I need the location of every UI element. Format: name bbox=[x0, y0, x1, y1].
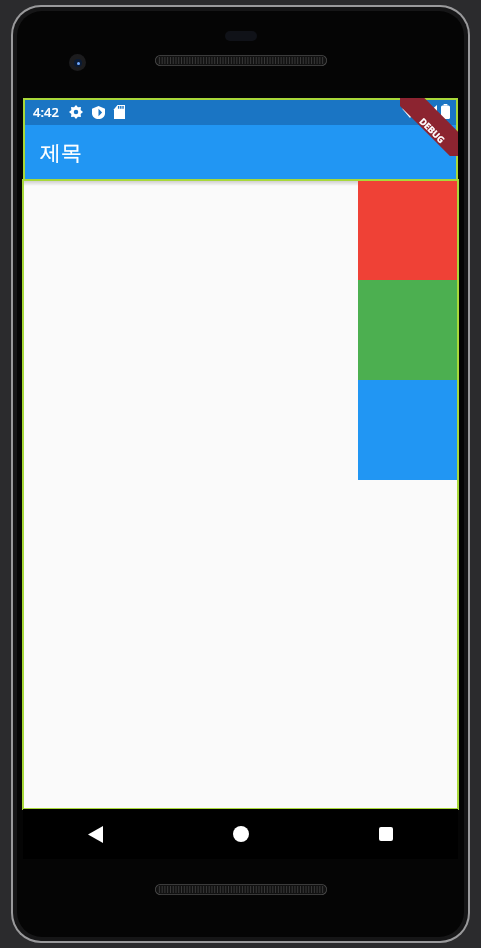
staticText: 제목 bbox=[40, 140, 82, 166]
staticText: DEBUG bbox=[417, 115, 448, 145]
button[interactable]: Back bbox=[23, 809, 168, 859]
button[interactable]: Blue block bbox=[358, 380, 458, 480]
button[interactable]: Green block bbox=[358, 280, 458, 380]
button[interactable]: Home bbox=[168, 809, 313, 859]
staticText: 4:42 bbox=[33, 103, 59, 121]
button[interactable]: Recents bbox=[313, 809, 458, 859]
button[interactable]: Red block bbox=[358, 180, 458, 280]
